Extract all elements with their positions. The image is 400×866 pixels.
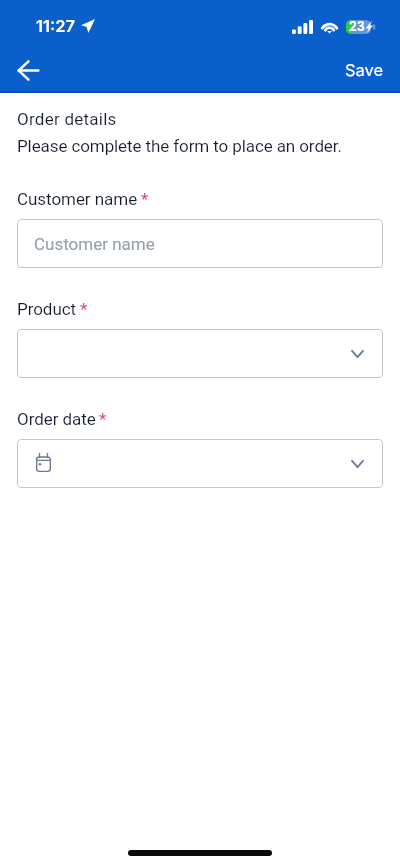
button[interactable]: Save: [328, 48, 400, 92]
staticText: *: [80, 299, 88, 319]
staticText: Please complete the form to place an ord…: [17, 136, 342, 156]
staticText: 23: [349, 19, 365, 34]
button[interactable]: [17, 329, 383, 378]
button[interactable]: Back: [6, 48, 50, 92]
button[interactable]: Customer name: [17, 219, 383, 268]
staticText: 11:27: [36, 16, 76, 36]
staticText: *: [141, 189, 149, 209]
staticText: Order details: [17, 109, 117, 129]
staticText: Customer name: [34, 234, 155, 254]
button[interactable]: [17, 439, 383, 488]
staticText: *: [99, 409, 107, 429]
staticText: Product: [17, 299, 77, 319]
staticText: Save: [345, 60, 384, 80]
staticText: Order date: [17, 409, 96, 429]
staticText: Customer name: [17, 189, 138, 209]
